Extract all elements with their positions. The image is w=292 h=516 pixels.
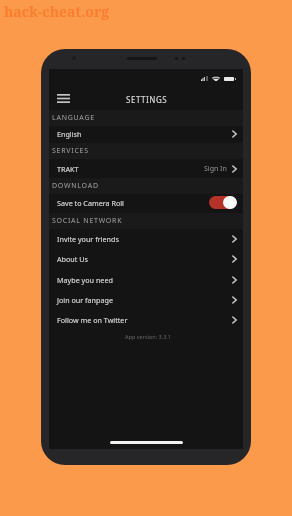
staticText: App version: 3.3.1 bbox=[51, 333, 245, 340]
staticText: SERVICES bbox=[52, 146, 89, 156]
button[interactable]: Follow me on Twitter bbox=[49, 310, 243, 330]
button[interactable]: About Us bbox=[49, 249, 243, 269]
button[interactable]: TRAKT bbox=[49, 159, 243, 179]
button[interactable]: English bbox=[49, 124, 243, 144]
staticText: Follow me on Twitter bbox=[57, 315, 128, 325]
staticText: TRAKT bbox=[57, 164, 79, 174]
staticText: Sign In bbox=[204, 164, 227, 174]
staticText: Invite your friends bbox=[57, 234, 119, 244]
staticText: Maybe you need bbox=[57, 275, 113, 285]
staticText: DOWNLOAD bbox=[52, 181, 99, 191]
staticText: SETTINGS bbox=[126, 94, 168, 105]
staticText: Save to Camera Roll bbox=[57, 198, 124, 208]
staticText: hack-cheat.org bbox=[4, 2, 110, 21]
button[interactable]: Open navigation menu bbox=[53, 90, 74, 107]
staticText: Join our fanpage bbox=[57, 295, 113, 305]
button[interactable]: Join our fanpage bbox=[49, 290, 243, 310]
staticText: SOCIAL NETWORK bbox=[52, 216, 123, 226]
button[interactable]: Save to Camera Roll toggle bbox=[49, 193, 243, 213]
staticText: LANGUAGE bbox=[52, 113, 95, 123]
button[interactable]: Maybe you need bbox=[49, 270, 243, 290]
staticText: English bbox=[57, 129, 82, 139]
button[interactable]: Invite your friends bbox=[49, 229, 243, 249]
staticText: About Us bbox=[57, 254, 88, 264]
